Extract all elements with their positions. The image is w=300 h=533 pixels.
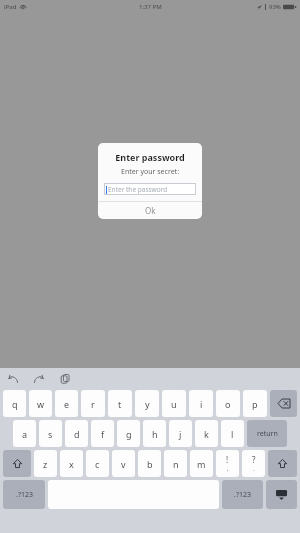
staticText: .?123 — [234, 490, 251, 500]
staticText: c — [95, 458, 100, 470]
button[interactable]: w — [29, 390, 52, 417]
staticText: p — [252, 398, 258, 410]
button[interactable]: v — [112, 450, 135, 477]
button[interactable]: q — [3, 390, 26, 417]
staticText: z — [43, 458, 48, 470]
button[interactable]: h — [143, 420, 166, 447]
button[interactable]: ? — [242, 450, 265, 477]
staticText: Enter the password — [108, 185, 168, 194]
staticText: u — [171, 398, 177, 410]
button[interactable]: d — [65, 420, 88, 447]
staticText: b — [147, 458, 153, 470]
staticText: q — [12, 398, 18, 410]
button[interactable]: Ok — [98, 202, 202, 219]
staticText: w — [37, 398, 45, 410]
staticText: , — [227, 465, 229, 473]
button[interactable]: c — [86, 450, 109, 477]
staticText: 1:37 PM — [139, 3, 162, 11]
staticText: return — [257, 429, 278, 439]
staticText: k — [204, 428, 209, 440]
button[interactable]: x — [60, 450, 83, 477]
button[interactable]: o — [216, 390, 240, 417]
staticText: i — [200, 398, 203, 410]
button[interactable]: Shift — [268, 450, 297, 477]
button[interactable]: Undo — [6, 372, 20, 386]
button[interactable]: .?123 — [222, 480, 263, 509]
button[interactable]: m — [190, 450, 213, 477]
staticText: o — [225, 398, 231, 410]
staticText: iPad — [4, 3, 17, 11]
staticText: v — [121, 458, 126, 470]
button[interactable]: e — [55, 390, 78, 417]
staticText: y — [145, 398, 150, 410]
button[interactable]: y — [135, 390, 159, 417]
button[interactable]: i — [189, 390, 213, 417]
staticText: j — [179, 428, 182, 440]
staticText: ? — [252, 454, 256, 465]
staticText: r — [91, 398, 95, 410]
staticText: d — [74, 428, 80, 440]
button[interactable]: z — [34, 450, 57, 477]
staticText: n — [173, 458, 179, 470]
button[interactable]: p — [243, 390, 267, 417]
staticText: m — [197, 458, 206, 470]
button[interactable]: Backspace — [270, 390, 297, 417]
button[interactable]: r — [81, 390, 105, 417]
staticText: a — [22, 428, 28, 440]
button[interactable]: return — [247, 420, 287, 447]
button[interactable]: Hide keyboard — [266, 480, 297, 509]
button[interactable]: j — [169, 420, 192, 447]
button[interactable]: a — [13, 420, 36, 447]
button[interactable]: Paste — [58, 372, 72, 386]
button[interactable]: u — [162, 390, 186, 417]
staticText: ! — [226, 454, 229, 465]
staticText: Ok — [145, 205, 156, 216]
staticText: Enter password — [98, 151, 202, 163]
button[interactable]: l — [221, 420, 244, 447]
staticText: x — [69, 458, 74, 470]
staticText: . — [253, 465, 255, 473]
button[interactable]: s — [39, 420, 62, 447]
button[interactable]: b — [138, 450, 161, 477]
button[interactable]: Enter the password — [104, 183, 196, 195]
staticText: f — [101, 428, 105, 440]
staticText: t — [118, 398, 122, 410]
button[interactable]: t — [108, 390, 132, 417]
staticText: l — [231, 428, 234, 440]
staticText: e — [64, 398, 70, 410]
staticText: g — [126, 428, 132, 440]
button[interactable]: .?123 — [3, 480, 45, 509]
button[interactable]: Shift — [3, 450, 31, 477]
staticText: s — [48, 428, 53, 440]
staticText: 93% — [269, 3, 281, 11]
button[interactable]: k — [195, 420, 218, 447]
button[interactable]: n — [164, 450, 187, 477]
staticText: h — [152, 428, 158, 440]
staticText: .?123 — [16, 490, 33, 500]
button[interactable]: g — [117, 420, 140, 447]
button[interactable]: ! — [216, 450, 239, 477]
button[interactable]: Redo — [32, 372, 46, 386]
staticText: Enter your secret: — [98, 167, 202, 177]
button[interactable]: f — [91, 420, 114, 447]
